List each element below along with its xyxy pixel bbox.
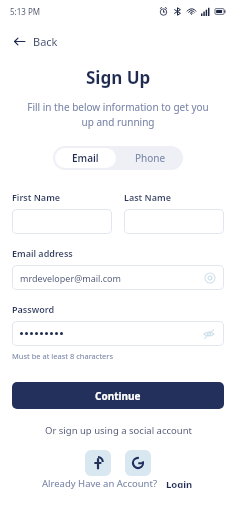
- button[interactable]: Show password: [202, 327, 216, 341]
- staticText: Fill in the below information to get you…: [26, 100, 210, 129]
- staticText: Email address: [12, 247, 73, 259]
- staticText: First Name: [12, 191, 61, 203]
- button[interactable]: Login: [164, 476, 195, 490]
- button[interactable]: Sign up with Google: [125, 450, 151, 476]
- staticText: 5:13 PM: [10, 6, 41, 17]
- button[interactable]: mrdeveloper@mail.com: [12, 265, 224, 290]
- staticText: Phone: [135, 151, 166, 165]
- staticText: Email: [72, 151, 99, 165]
- staticText: Password: [12, 303, 55, 315]
- button[interactable]: [12, 209, 112, 234]
- staticText: Must be at least 8 characters: [12, 351, 114, 361]
- staticText: Back: [33, 34, 58, 49]
- staticText: Continue: [95, 389, 141, 403]
- staticText: Or sign up using a social account: [45, 424, 192, 437]
- button[interactable]: Continue: [12, 382, 224, 409]
- staticText: Already Have an Account?: [42, 477, 158, 490]
- button[interactable]: Phone: [118, 146, 183, 170]
- button[interactable]: Show password: [12, 321, 224, 346]
- staticText: Login: [166, 478, 193, 488]
- button[interactable]: Email: [55, 148, 116, 168]
- button[interactable]: Back: [10, 31, 61, 52]
- staticText: mrdeveloper@mail.com: [20, 272, 121, 284]
- staticText: Sign Up: [86, 66, 151, 89]
- button[interactable]: Sign up with Facebook: [85, 450, 111, 476]
- staticText: Last Name: [124, 191, 171, 203]
- button[interactable]: [124, 209, 224, 234]
